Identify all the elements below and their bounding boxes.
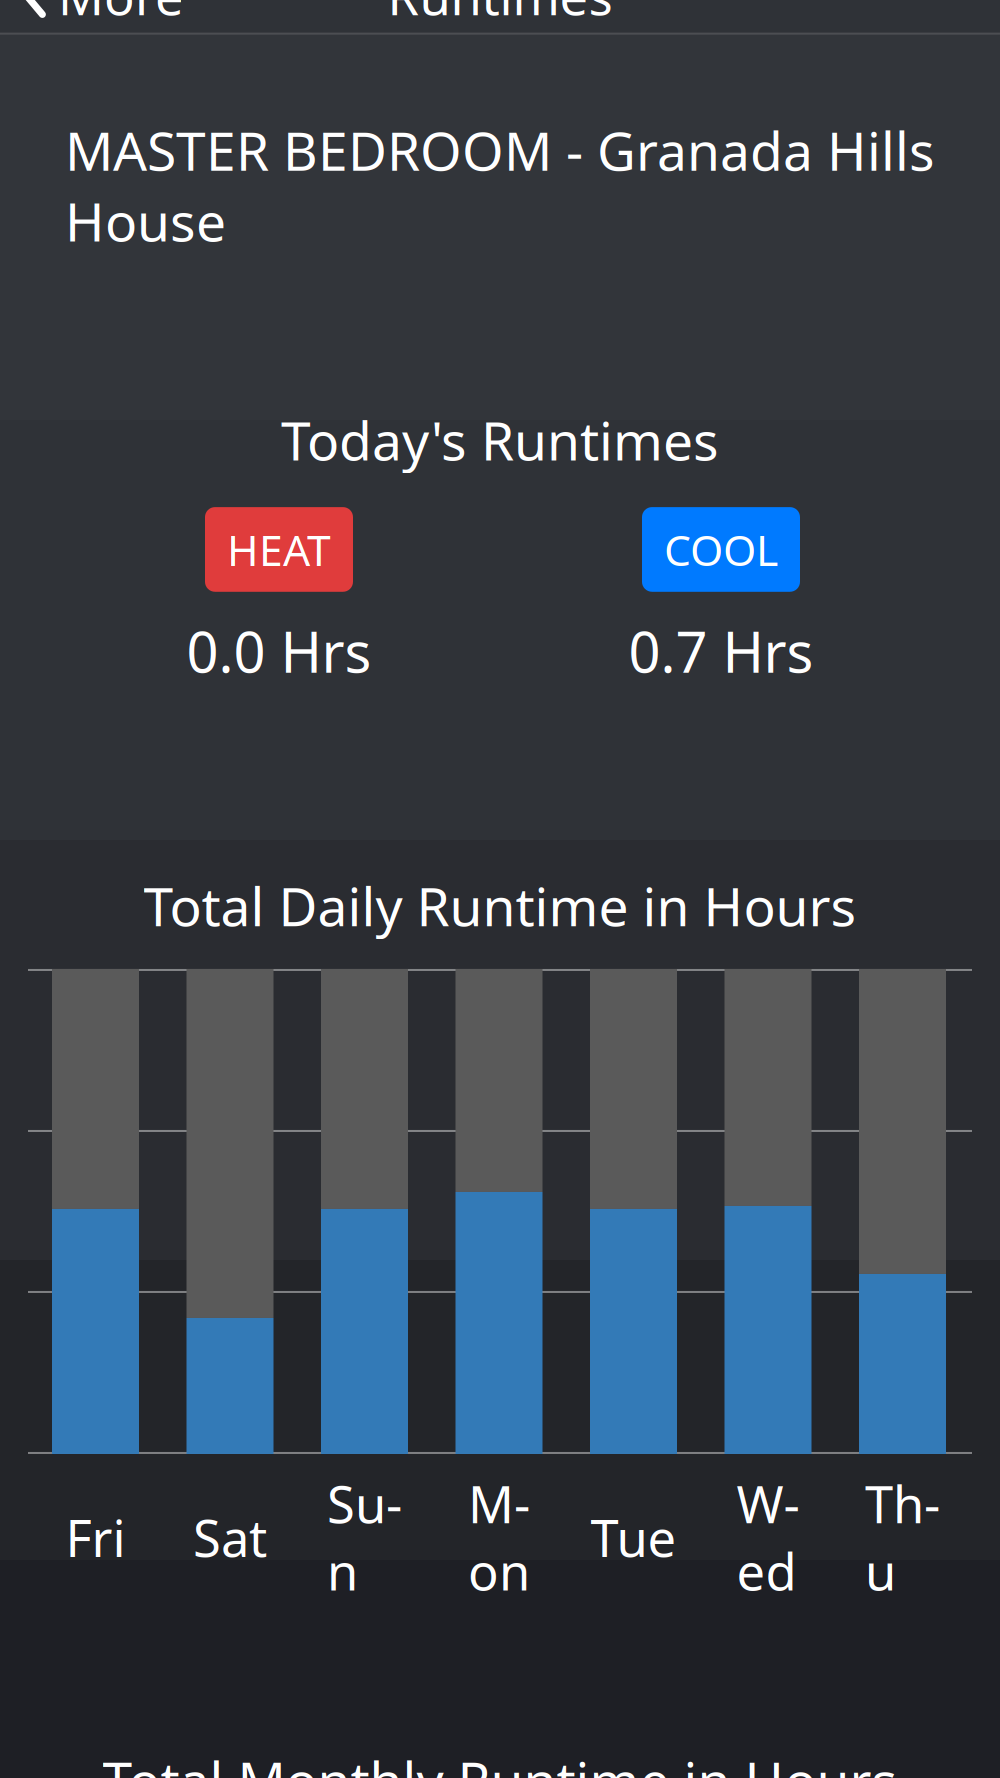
staticText: Total Daily Runtime in Hours — [143, 870, 856, 941]
staticText: More — [58, 0, 184, 29]
button[interactable]: HEAT — [205, 507, 353, 592]
staticText: COOL — [664, 521, 778, 578]
staticText: Sat — [193, 1504, 267, 1571]
button[interactable]: Back to More — [0, 0, 206, 41]
button[interactable]: COOL — [642, 507, 800, 592]
staticText: Tue — [590, 1504, 676, 1571]
staticText: Thu — [865, 1470, 940, 1605]
staticText: Fri — [65, 1504, 125, 1571]
staticText: 0.0 Hrs — [186, 614, 371, 688]
staticText: Today's Runtimes — [281, 404, 719, 475]
staticText: Runtimes — [387, 0, 612, 29]
staticText: HEAT — [227, 521, 331, 578]
staticText: Mon — [468, 1470, 530, 1605]
staticText: Total Monthly Runtime in Hours — [102, 1744, 897, 1778]
staticText: Wed — [736, 1470, 799, 1605]
staticText: 0.7 Hrs — [628, 614, 813, 688]
staticText: Sun — [327, 1470, 402, 1605]
staticText: MASTER BEDROOM - Granada Hills House — [65, 115, 935, 256]
